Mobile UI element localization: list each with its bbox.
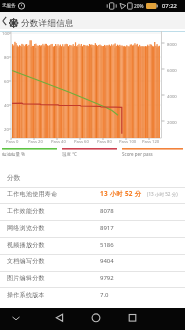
staticText: Pass 100	[119, 139, 137, 145]
staticText: 文档编写分数	[7, 257, 45, 265]
staticText: 操作系统版本	[7, 291, 45, 299]
staticText: 工作效能分数	[7, 207, 45, 215]
staticText: 20	[4, 126, 9, 132]
staticText: (13 小时 52 分)	[147, 191, 178, 197]
staticText: 电池电量 %	[2, 151, 25, 157]
button[interactable]	[8, 312, 24, 325]
button[interactable]	[0, 17, 10, 27]
staticText: 7.0	[100, 291, 109, 299]
staticText: 视频播放分数	[7, 241, 45, 249]
staticText: 温度 °C	[62, 151, 77, 157]
button[interactable]	[0, 220, 185, 236]
staticText: 分数	[7, 173, 21, 182]
staticText: 6000	[167, 67, 177, 73]
button[interactable]	[0, 287, 185, 303]
button[interactable]	[0, 237, 185, 253]
staticText: 9404	[100, 257, 114, 265]
staticText: Pass 0	[6, 139, 19, 145]
staticText: 07:22	[162, 2, 177, 10]
staticText: Score per pass	[122, 151, 153, 157]
staticText: 13 小时 52 分	[100, 189, 142, 198]
staticText: 分数详细信息	[21, 18, 74, 29]
button[interactable]	[52, 311, 67, 325]
staticText: 网络浏览分数	[7, 224, 45, 232]
button[interactable]	[0, 271, 185, 287]
staticText: 9792	[100, 274, 114, 282]
staticText: Pass 20	[28, 139, 43, 145]
staticText: 80	[4, 54, 9, 60]
staticText: 8078	[100, 207, 114, 215]
staticText: 60	[4, 78, 9, 84]
staticText: 100	[2, 30, 10, 36]
button[interactable]	[125, 311, 140, 325]
staticText: 40	[4, 102, 9, 108]
staticText: 8000	[167, 41, 177, 47]
staticText: Pass 80	[97, 139, 112, 145]
staticText: Pass 120	[142, 139, 160, 145]
button[interactable]	[89, 311, 104, 325]
staticText: 4000	[167, 93, 177, 99]
staticText: 图片编辑分数	[7, 274, 45, 282]
staticText: 5186	[100, 241, 114, 249]
staticText: 2000	[167, 119, 177, 125]
staticText: Pass 60	[74, 139, 89, 145]
button[interactable]	[0, 254, 185, 270]
staticText: 8917	[100, 224, 114, 232]
staticText: 无服务	[2, 3, 16, 9]
button[interactable]	[0, 187, 185, 203]
staticText: 工作电池使用寿命	[7, 190, 58, 198]
button[interactable]	[0, 203, 185, 219]
staticText: Pass 40	[51, 139, 66, 145]
staticText: 20%	[134, 3, 144, 10]
